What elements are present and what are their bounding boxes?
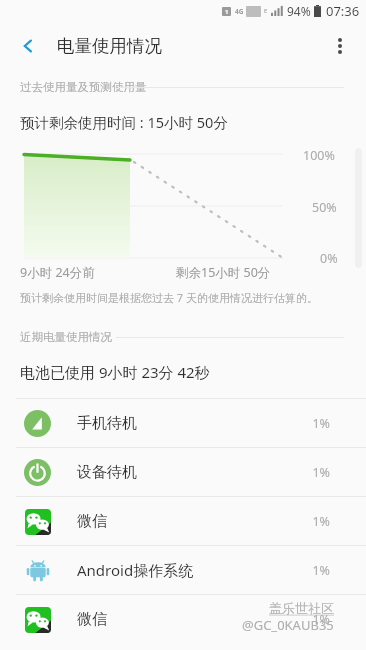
staticText: 50% [312, 199, 337, 216]
staticText: 预计剩余使用时间 : 15小时 50分 [20, 112, 228, 132]
staticText: 94% [287, 3, 311, 19]
button[interactable]: 微信 [0, 595, 366, 643]
staticText: 1 [225, 8, 229, 16]
button[interactable]: Android操作系统 [0, 546, 366, 594]
staticText: 预计剩余使用时间是根据您过去 7 天的使用情况进行估算的。 [20, 290, 319, 305]
staticText: 近期电量使用情况 [20, 330, 112, 344]
button[interactable]: More options [320, 26, 360, 66]
staticText: 1% [300, 513, 330, 530]
button[interactable]: 微信 [0, 497, 366, 545]
staticText: 手机待机 [77, 414, 300, 433]
staticText: @GC_0KAUB35 [242, 616, 334, 634]
staticText: 盖乐世社区 [269, 600, 334, 616]
button[interactable]: Back [8, 26, 48, 66]
staticText: 1% [300, 464, 330, 481]
staticText: 1% [300, 611, 330, 628]
staticText: 电池已使用 9小时 23分 42秒 [20, 362, 210, 382]
button[interactable]: 手机待机 [0, 399, 366, 447]
staticText: 电量使用情况 [57, 35, 162, 57]
staticText: 1% [300, 415, 330, 432]
staticText: Android操作系统 [77, 560, 300, 580]
staticText: 过去使用量及预测使用量 [20, 80, 147, 94]
staticText: 0% [320, 250, 338, 267]
staticText: 100% [303, 147, 335, 164]
staticText: 9小时 24分前 [20, 264, 95, 281]
staticText: 设备待机 [77, 463, 300, 482]
staticText: E [264, 7, 268, 15]
staticText: 微信 [77, 512, 300, 531]
staticText: 07:36 [326, 2, 360, 20]
staticText: 剩余15小时 50分 [176, 264, 271, 281]
staticText: 微信 [77, 610, 300, 629]
button[interactable]: 设备待机 [0, 448, 366, 496]
staticText: 1% [300, 562, 330, 579]
staticText: 4G [235, 7, 244, 16]
